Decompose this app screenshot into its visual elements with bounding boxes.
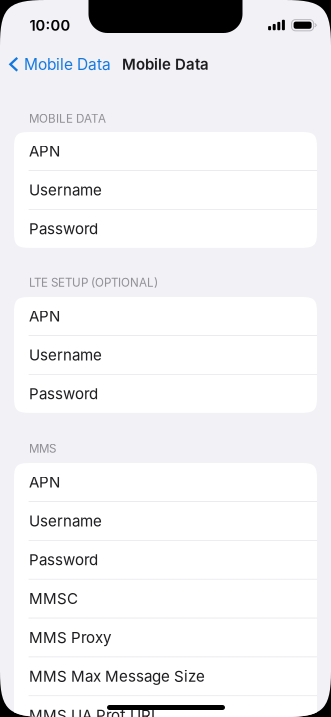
staticText: Username bbox=[29, 181, 102, 199]
staticText: APN bbox=[29, 307, 60, 325]
button[interactable]: Username bbox=[14, 336, 317, 374]
staticText: Username bbox=[29, 512, 102, 530]
staticText: APN bbox=[29, 473, 60, 491]
button[interactable]: APN bbox=[14, 297, 317, 335]
staticText: 10:00 bbox=[29, 17, 70, 34]
button[interactable]: Password bbox=[14, 375, 317, 413]
button[interactable]: Password bbox=[14, 541, 317, 579]
staticText: Password bbox=[29, 220, 98, 238]
staticText: Username bbox=[29, 346, 102, 364]
button[interactable]: Username bbox=[14, 171, 317, 209]
button[interactable]: MMSC bbox=[14, 579, 317, 618]
button[interactable]: Mobile Data bbox=[1, 49, 117, 79]
button[interactable]: Username bbox=[14, 502, 317, 540]
staticText: MOBILE DATA bbox=[29, 112, 106, 126]
button[interactable]: APN bbox=[14, 132, 317, 170]
staticText: MMS Proxy bbox=[29, 628, 111, 647]
button[interactable]: Password bbox=[14, 210, 317, 248]
button[interactable]: MMS UA Prof URL bbox=[14, 696, 317, 717]
staticText: APN bbox=[29, 142, 60, 160]
staticText: Mobile Data bbox=[122, 55, 209, 73]
button[interactable]: MMS Max Message Size bbox=[14, 657, 317, 695]
staticText: Password bbox=[29, 551, 98, 569]
button[interactable]: MMS Proxy bbox=[14, 618, 317, 656]
staticText: LTE SETUP (OPTIONAL) bbox=[29, 275, 158, 289]
staticText: MMSC bbox=[29, 589, 78, 608]
staticText: MMS Max Message Size bbox=[29, 667, 205, 685]
staticText: Mobile Data bbox=[24, 55, 111, 74]
button[interactable]: APN bbox=[14, 463, 317, 501]
staticText: MMS bbox=[29, 441, 56, 455]
staticText: MMS UA Prof URL bbox=[29, 706, 160, 717]
staticText: Password bbox=[29, 385, 98, 403]
